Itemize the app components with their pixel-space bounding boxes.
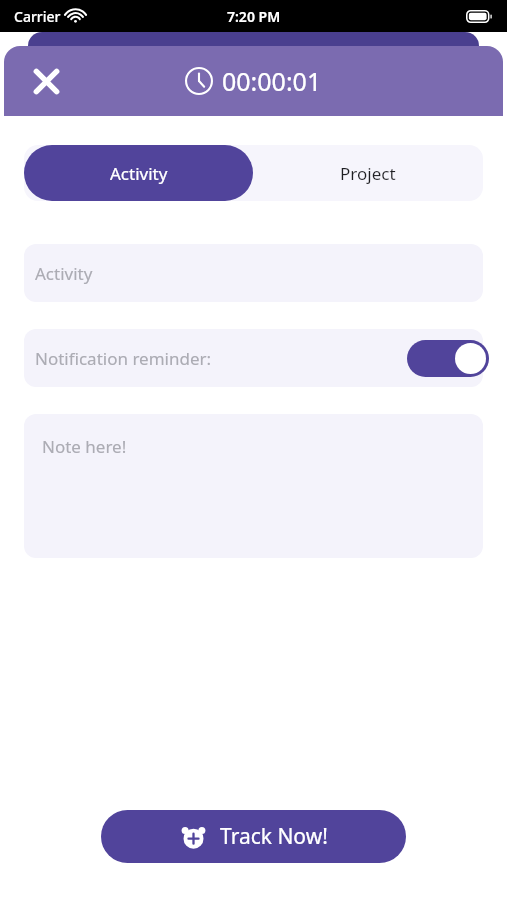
button[interactable]: Notification reminder toggle xyxy=(407,340,489,377)
button[interactable]: Close xyxy=(20,55,72,107)
staticText: 00:00:01 xyxy=(222,64,322,98)
staticText: Activity xyxy=(110,162,168,185)
button[interactable]: Track Now! xyxy=(101,810,406,863)
button[interactable]: Note here! xyxy=(24,414,483,558)
button[interactable]: Activity xyxy=(24,244,483,302)
button[interactable]: Activity xyxy=(24,145,253,201)
staticText: 7:20 PM xyxy=(227,7,281,26)
staticText: Project xyxy=(340,162,396,185)
staticText: Note here! xyxy=(42,435,127,458)
staticText: Carrier xyxy=(14,7,61,26)
staticText: Notification reminder: xyxy=(35,347,212,370)
staticText: Activity xyxy=(35,262,93,285)
button[interactable]: Project xyxy=(253,145,483,201)
staticText: Track Now! xyxy=(220,822,328,851)
